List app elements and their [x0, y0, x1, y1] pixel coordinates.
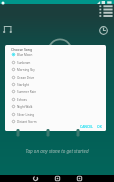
button[interactable]: Silver Lining: [5, 111, 106, 118]
staticText: Tap on any stone to get started: [25, 148, 89, 154]
staticText: Summer Rain: [17, 90, 36, 94]
button[interactable]: Night Walk: [5, 103, 106, 110]
button[interactable]: Recent apps: [74, 175, 84, 182]
staticText: CANCEL: [80, 124, 93, 129]
staticText: OK: [97, 124, 102, 129]
button[interactable]: Summer Rain: [5, 88, 106, 95]
staticText: Starlight: [17, 83, 29, 87]
button[interactable]: Morning Sky: [5, 66, 106, 73]
button[interactable]: Starlight: [5, 81, 106, 88]
button[interactable]: Timer: [99, 26, 108, 35]
staticText: Blue Moon: [17, 53, 33, 57]
button[interactable]: Distant Storm: [5, 118, 106, 125]
button[interactable]: Playlist: [99, 5, 113, 18]
staticText: Ocean Drive: [17, 76, 35, 80]
button[interactable]: OK: [96, 123, 103, 130]
button[interactable]: Back: [30, 175, 40, 182]
button[interactable]: Sunbeam: [5, 59, 106, 66]
staticText: Sunbeam: [17, 61, 31, 65]
staticText: Morning Sky: [17, 68, 35, 72]
staticText: Silver Lining: [17, 113, 35, 117]
button[interactable]: Ocean Drive: [5, 74, 106, 81]
staticText: Distant Storm: [17, 120, 37, 124]
staticText: Echoes: [17, 98, 27, 102]
staticText: Choose Song: [11, 47, 33, 52]
button[interactable]: Echoes: [5, 96, 106, 103]
button[interactable]: Blue Moon: [5, 51, 106, 58]
button[interactable]: Home: [52, 175, 62, 182]
staticText: Night Walk: [17, 105, 33, 109]
button[interactable]: CANCEL: [79, 123, 94, 130]
